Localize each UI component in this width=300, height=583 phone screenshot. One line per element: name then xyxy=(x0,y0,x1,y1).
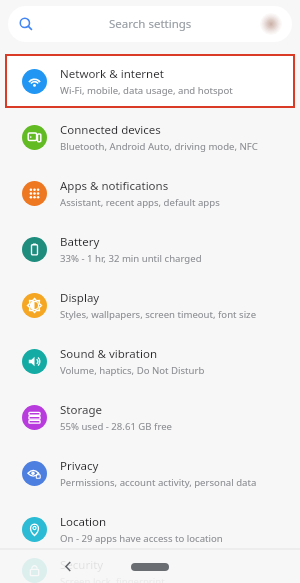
staticText: Sound & vibration xyxy=(60,346,157,362)
button[interactable]: Back xyxy=(56,554,80,578)
staticText: Location xyxy=(60,514,107,530)
staticText: Screen lock, fingerprint xyxy=(60,575,165,583)
staticText: On - 29 apps have access to location xyxy=(60,532,223,545)
staticText: Permissions, account activity, personal … xyxy=(60,476,257,489)
button[interactable]: Apps & notifications xyxy=(5,165,295,221)
button[interactable]: Sound & vibration xyxy=(5,333,295,389)
button[interactable]: Search xyxy=(15,13,37,35)
staticText: Search settings xyxy=(109,16,192,32)
staticText: 33% - 1 hr, 32 min until charged xyxy=(60,252,202,265)
staticText: Connected devices xyxy=(60,122,161,138)
button[interactable]: Privacy xyxy=(5,445,295,501)
staticText: Battery xyxy=(60,234,100,250)
staticText: Security xyxy=(60,557,104,573)
button[interactable]: Network & internet xyxy=(5,54,295,108)
staticText: Network & internet xyxy=(60,66,164,82)
staticText: Volume, haptics, Do Not Disturb xyxy=(60,364,205,377)
button[interactable]: Battery xyxy=(5,221,295,277)
staticText: 55% used - 28.61 GB free xyxy=(60,420,172,433)
button[interactable]: Account xyxy=(260,13,282,35)
button[interactable]: Display xyxy=(5,277,295,333)
button[interactable]: Storage xyxy=(5,389,295,445)
staticText: Storage xyxy=(60,402,102,418)
staticText: Apps & notifications xyxy=(60,178,169,194)
staticText: Styles, wallpapers, screen timeout, font… xyxy=(60,308,257,321)
button[interactable]: Home xyxy=(131,563,169,571)
staticText: Assistant, recent apps, default apps xyxy=(60,196,220,209)
staticText: Display xyxy=(60,290,100,306)
staticText: Wi-Fi, mobile, data usage, and hotspot xyxy=(60,84,233,97)
button[interactable]: Location xyxy=(5,501,295,557)
button[interactable]: Connected devices xyxy=(5,109,295,165)
staticText: Privacy xyxy=(60,458,99,474)
staticText: Bluetooth, Android Auto, driving mode, N… xyxy=(60,140,258,153)
button[interactable]: Search xyxy=(8,6,292,42)
button[interactable]: Security xyxy=(5,557,295,583)
